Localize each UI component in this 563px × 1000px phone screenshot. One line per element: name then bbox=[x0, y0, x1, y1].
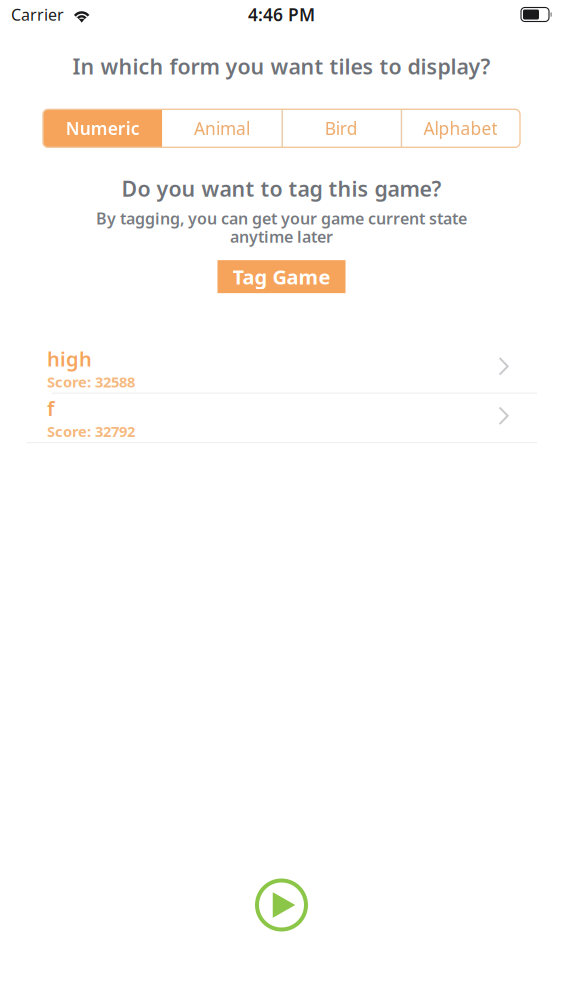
staticText: Bird bbox=[325, 117, 358, 140]
button[interactable]: Numeric bbox=[43, 109, 162, 147]
button[interactable]: Tag Game bbox=[217, 260, 345, 293]
button[interactable]: Alphabet bbox=[401, 109, 520, 147]
staticText: By tagging, you can get your game curren… bbox=[96, 208, 467, 229]
button[interactable]: high bbox=[0, 344, 563, 394]
staticText: Alphabet bbox=[423, 117, 497, 140]
staticText: Tag Game bbox=[232, 263, 330, 290]
staticText: anytime later bbox=[230, 226, 333, 247]
button[interactable]: Animal bbox=[162, 109, 281, 147]
staticText: Score: 32588 bbox=[47, 372, 135, 391]
staticText: high bbox=[47, 345, 92, 372]
staticText: Animal bbox=[194, 117, 250, 140]
button[interactable]: Bird bbox=[281, 109, 401, 147]
button[interactable]: Play bbox=[253, 877, 309, 933]
staticText: Numeric bbox=[66, 117, 140, 140]
staticText: Carrier bbox=[11, 4, 64, 25]
staticText: f bbox=[47, 395, 54, 421]
button[interactable]: f bbox=[0, 394, 563, 443]
staticText: Do you want to tag this game? bbox=[121, 174, 441, 203]
staticText: 4:46 PM bbox=[248, 3, 315, 26]
staticText: In which form you want tiles to display? bbox=[72, 52, 490, 80]
staticText: Score: 32792 bbox=[47, 421, 135, 441]
